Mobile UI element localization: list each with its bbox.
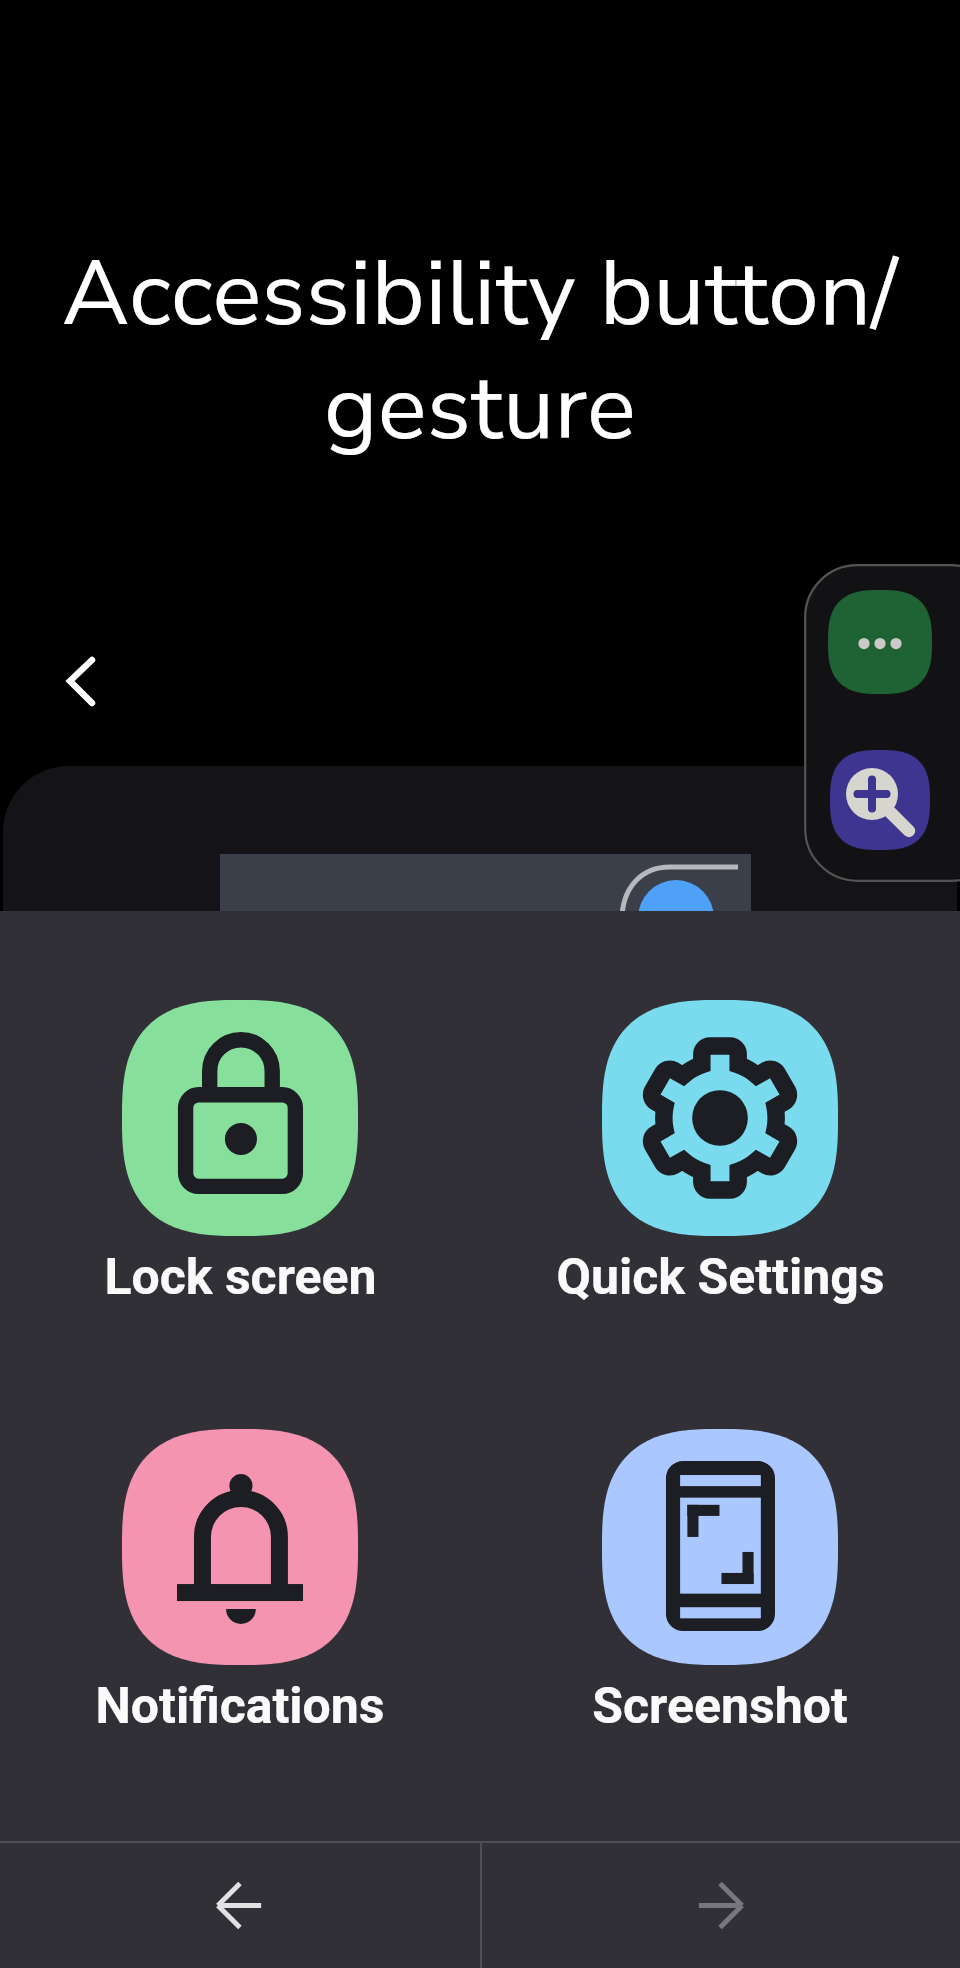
button[interactable]: More accessibility options — [828, 590, 932, 694]
button[interactable]: Notifications — [40, 1429, 440, 1736]
button[interactable]: Next — [481, 1843, 960, 1968]
button[interactable]: Back — [31, 622, 151, 742]
staticText: Lock screen — [104, 1248, 377, 1307]
staticText: Accessibility button/ gesture — [0, 232, 960, 470]
button[interactable]: Screenshot — [520, 1429, 920, 1736]
staticText: Notifications — [95, 1677, 385, 1736]
staticText: Screenshot — [592, 1677, 848, 1736]
button[interactable]: Previous — [0, 1843, 479, 1968]
button[interactable]: Lock screen — [40, 1000, 440, 1307]
button[interactable]: Quick Settings — [520, 1000, 920, 1307]
button[interactable]: Magnification — [830, 750, 930, 850]
staticText: Quick Settings — [556, 1248, 885, 1307]
